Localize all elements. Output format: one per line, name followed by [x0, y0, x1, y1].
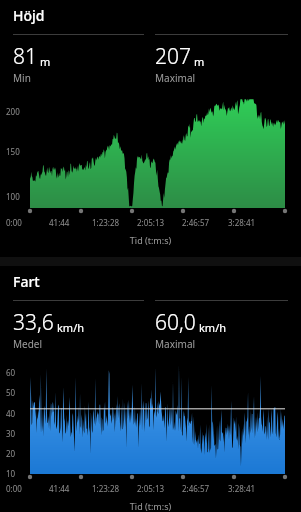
- staticText: 30: [6, 428, 16, 439]
- staticText: 1:23:28: [92, 217, 120, 228]
- staticText: 50: [6, 387, 16, 398]
- staticText: 207: [155, 42, 191, 71]
- staticText: km/h: [57, 320, 85, 335]
- staticText: Höjd: [13, 6, 45, 25]
- button[interactable]: Fart: [0, 266, 301, 512]
- staticText: 3:28:41: [228, 217, 256, 228]
- staticText: 0:00: [6, 483, 22, 494]
- staticText: 20: [6, 448, 16, 459]
- staticText: Tid (t:m:s): [0, 500, 301, 512]
- staticText: 41:44: [49, 217, 70, 228]
- staticText: 0:00: [6, 217, 22, 228]
- staticText: 2:46:57: [182, 217, 210, 228]
- staticText: 60,0: [155, 308, 196, 337]
- staticText: 2:05:13: [137, 217, 165, 228]
- staticText: Maximal: [155, 337, 196, 351]
- staticText: m: [194, 54, 205, 69]
- staticText: Tid (t:m:s): [0, 234, 301, 246]
- staticText: 40: [6, 408, 16, 419]
- staticText: 200: [6, 106, 20, 117]
- staticText: 33,6: [13, 308, 54, 337]
- staticText: Fart: [13, 272, 40, 291]
- staticText: 10: [6, 468, 16, 479]
- staticText: 3:28:41: [228, 483, 256, 494]
- staticText: Medel: [13, 337, 43, 351]
- staticText: 1:23:28: [92, 483, 120, 494]
- staticText: m: [40, 54, 51, 69]
- staticText: 150: [6, 146, 20, 157]
- button[interactable]: Höjd: [0, 0, 301, 254]
- staticText: Maximal: [155, 71, 196, 85]
- staticText: 100: [6, 191, 20, 202]
- staticText: Min: [13, 71, 31, 85]
- staticText: 60: [6, 367, 16, 378]
- staticText: 2:46:57: [182, 483, 210, 494]
- staticText: 41:44: [49, 483, 70, 494]
- staticText: 2:05:13: [137, 483, 165, 494]
- staticText: 81: [13, 42, 37, 71]
- staticText: km/h: [199, 320, 227, 335]
